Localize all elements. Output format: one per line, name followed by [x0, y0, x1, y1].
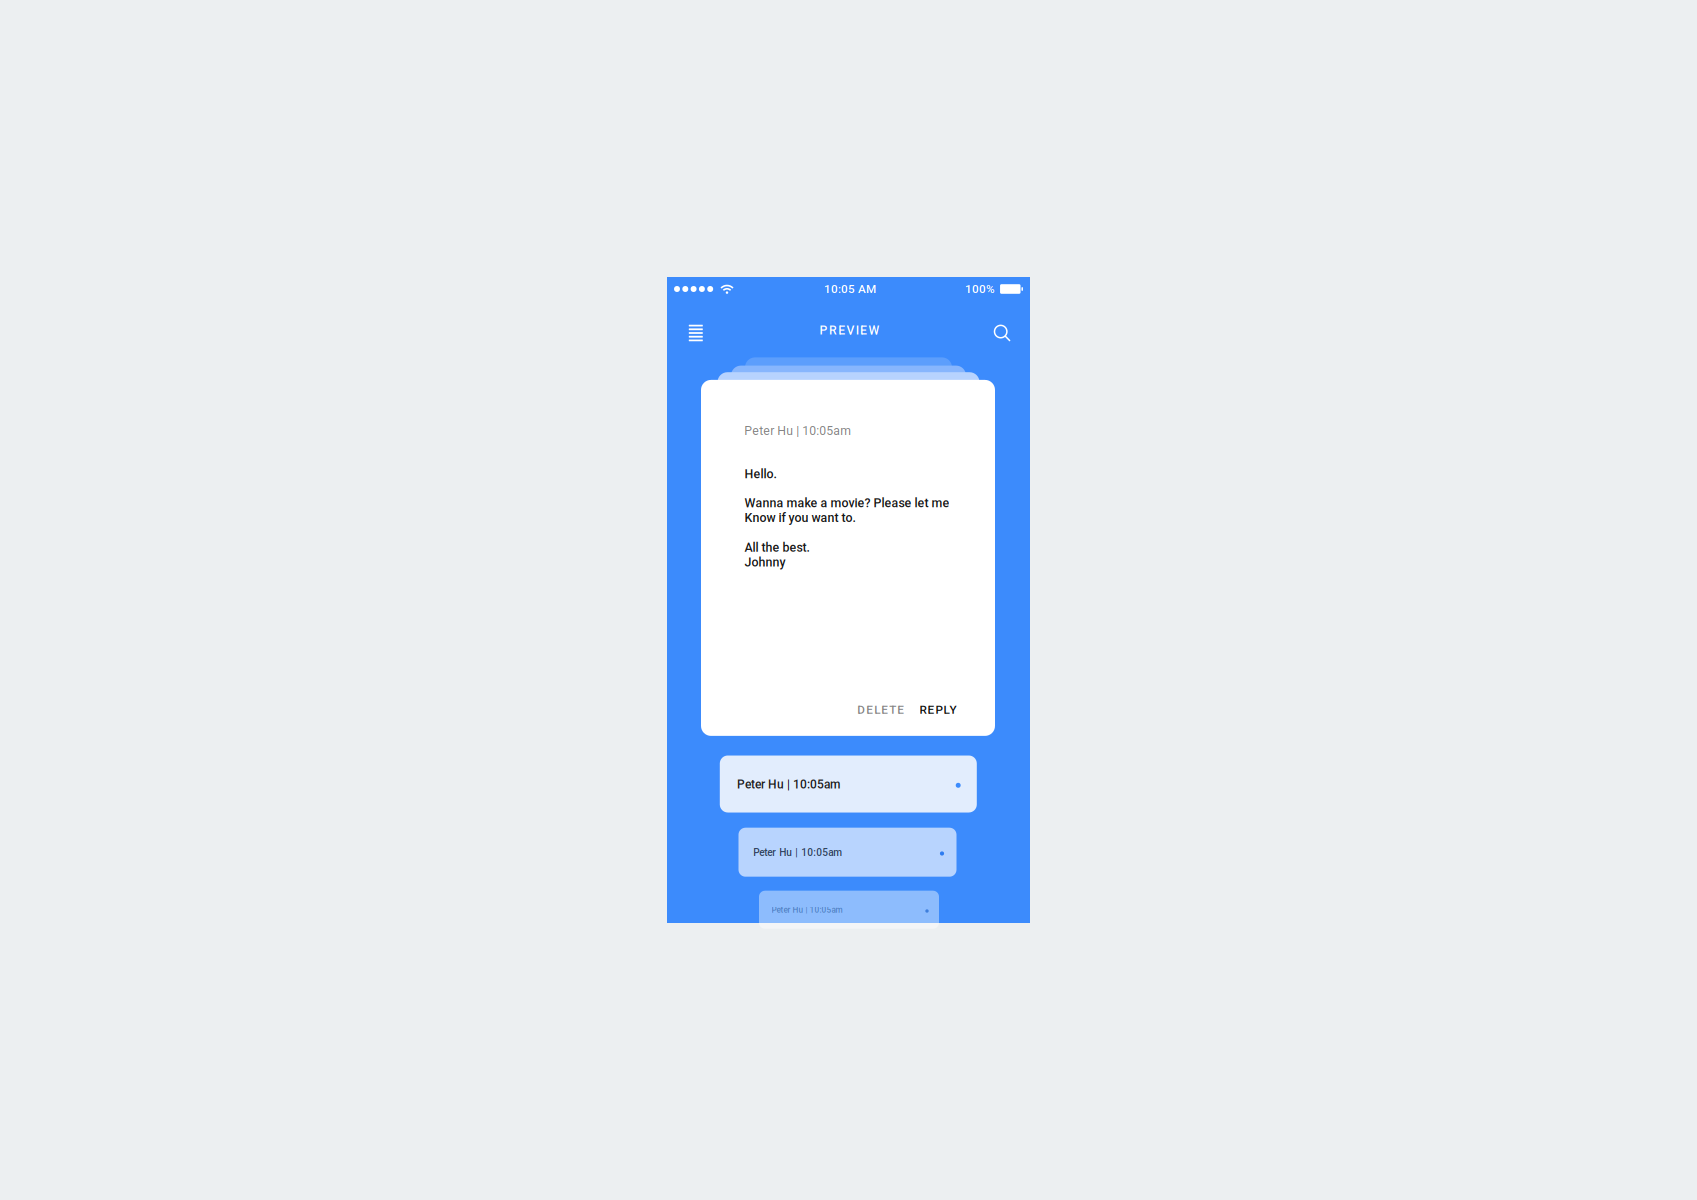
staticText: Peter Hu | 10:05am — [737, 777, 840, 791]
staticText: Wanna make a movie? Please let me — [744, 496, 949, 510]
button[interactable]: Peter Hu | 10:05am — [738, 828, 956, 877]
button[interactable]: Peter Hu | 10:05am — [759, 891, 939, 929]
staticText: All the best. — [744, 540, 809, 555]
staticText: PREVIEW — [820, 323, 879, 338]
staticText: Peter Hu | 10:05am — [771, 905, 842, 915]
button[interactable]: Peter Hu | 10:05am — [720, 755, 977, 812]
staticText: Peter Hu | 10:05am — [753, 847, 842, 858]
staticText: 10:05 AM — [824, 282, 876, 296]
staticText: DELETE — [857, 703, 904, 717]
button[interactable]: REPLY — [920, 696, 978, 724]
staticText: Hello. — [744, 467, 776, 481]
staticText: 100% — [965, 282, 995, 296]
staticText: Know if you want to. — [744, 510, 855, 525]
button[interactable]: Menu — [678, 315, 714, 351]
staticText: Johnny — [744, 555, 785, 569]
staticText: Peter Hu | 10:05am — [744, 424, 851, 438]
button[interactable]: DELETE — [857, 696, 915, 724]
button[interactable]: Search — [984, 315, 1020, 351]
staticText: REPLY — [920, 703, 957, 717]
